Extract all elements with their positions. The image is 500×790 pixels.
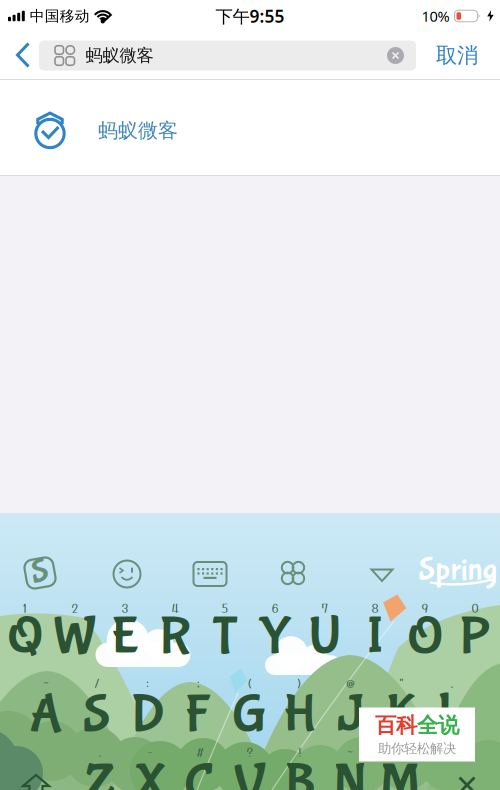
staticText: 2: [71, 601, 78, 615]
staticText: D: [131, 684, 164, 746]
button[interactable]: Q: [7, 606, 42, 668]
button[interactable]: U: [309, 606, 341, 668]
staticText: W: [54, 606, 96, 668]
button[interactable]: 键盘布局: [193, 562, 226, 586]
button[interactable]: Shift: [23, 775, 49, 790]
staticText: .: [450, 676, 454, 690]
button[interactable]: Y: [258, 606, 291, 668]
button[interactable]: T: [212, 606, 237, 668]
button[interactable]: L: [437, 684, 466, 746]
button[interactable]: C: [184, 753, 216, 790]
staticText: Y: [258, 606, 291, 668]
button[interactable]: 蚂蚁微客: [0, 80, 500, 175]
staticText: 助你轻松解决: [378, 740, 456, 757]
staticText: 百科: [375, 712, 417, 738]
staticText: N: [333, 753, 366, 790]
staticText: 中国移动: [30, 7, 90, 25]
staticText: 0: [471, 601, 478, 615]
staticText: Spring: [418, 551, 497, 589]
button[interactable]: 删除: [459, 777, 474, 790]
staticText: Z: [84, 753, 115, 790]
button[interactable]: K: [386, 684, 416, 746]
button[interactable]: 返回: [0, 43, 39, 67]
staticText: 下午9:55: [215, 4, 284, 27]
staticText: 蚂蚁微客: [98, 118, 178, 143]
staticText: 1: [22, 601, 27, 615]
staticText: 6: [271, 601, 278, 615]
staticText: S: [31, 553, 48, 591]
staticText: S: [83, 684, 111, 746]
staticText: 8: [371, 601, 378, 615]
button[interactable]: 表情: [113, 560, 140, 587]
staticText: K: [386, 684, 416, 746]
staticText: .: [98, 745, 102, 759]
button[interactable]: 取消: [416, 42, 500, 69]
staticText: 5: [221, 601, 228, 615]
staticText: P: [459, 606, 490, 668]
button[interactable]: 搜狗输入法: [25, 554, 54, 592]
button[interactable]: A: [29, 684, 62, 746]
staticText: 10%: [421, 6, 449, 26]
staticText: @: [345, 676, 355, 690]
staticText: 全说: [417, 712, 459, 738]
staticText: 7: [321, 601, 328, 615]
button[interactable]: X: [133, 753, 166, 790]
button[interactable]: H: [283, 684, 316, 746]
staticText: G: [232, 684, 266, 746]
staticText: ~: [347, 745, 353, 759]
staticText: 取消: [436, 42, 478, 69]
button[interactable]: B: [284, 753, 315, 790]
staticText: J: [337, 684, 364, 746]
staticText: M: [380, 753, 419, 790]
staticText: 4: [171, 601, 178, 615]
staticText: :: [145, 676, 149, 690]
staticText: Q: [7, 606, 42, 668]
staticText: R: [159, 606, 190, 668]
staticText: B: [284, 753, 315, 790]
staticText: U: [309, 606, 341, 668]
button[interactable]: J: [337, 684, 364, 746]
staticText: 9: [421, 601, 428, 615]
staticText: H: [283, 684, 316, 746]
button[interactable]: G: [232, 684, 266, 746]
staticText: L: [437, 684, 466, 746]
staticText: V: [234, 753, 266, 790]
button[interactable]: 清除: [387, 47, 404, 64]
button[interactable]: W: [54, 606, 96, 668]
button[interactable]: N: [333, 753, 366, 790]
button[interactable]: I: [367, 606, 383, 668]
staticText: F: [185, 684, 212, 746]
staticText: …: [394, 745, 406, 759]
staticText: O: [407, 606, 442, 668]
staticText: 蚂蚁微客: [85, 45, 153, 66]
staticText: ": [399, 676, 404, 690]
staticText: ~: [43, 676, 49, 690]
staticText: /: [94, 676, 100, 690]
staticText: ?: [246, 745, 253, 759]
button[interactable]: V: [234, 753, 266, 790]
staticText: A: [29, 684, 62, 746]
button[interactable]: Z: [84, 753, 115, 790]
staticText: T: [212, 606, 237, 668]
button[interactable]: O: [407, 606, 442, 668]
staticText: #: [196, 745, 204, 759]
button[interactable]: 收起键盘: [370, 568, 393, 581]
staticText: X: [133, 753, 166, 790]
button[interactable]: P: [459, 606, 490, 668]
staticText: E: [111, 606, 139, 668]
button[interactable]: S: [83, 684, 111, 746]
button[interactable]: D: [131, 684, 164, 746]
staticText: C: [184, 753, 216, 790]
staticText: ;: [196, 676, 200, 690]
staticText: !: [298, 745, 302, 759]
button[interactable]: F: [185, 684, 212, 746]
staticText: I: [367, 606, 383, 668]
button[interactable]: R: [159, 606, 190, 668]
button[interactable]: 皮肤设置: [287, 567, 299, 579]
button[interactable]: E: [111, 606, 139, 668]
staticText: 3: [121, 601, 128, 615]
staticText: -: [147, 745, 153, 759]
button[interactable]: M: [380, 753, 419, 790]
staticText: ): [297, 676, 303, 690]
staticText: (: [246, 676, 252, 690]
